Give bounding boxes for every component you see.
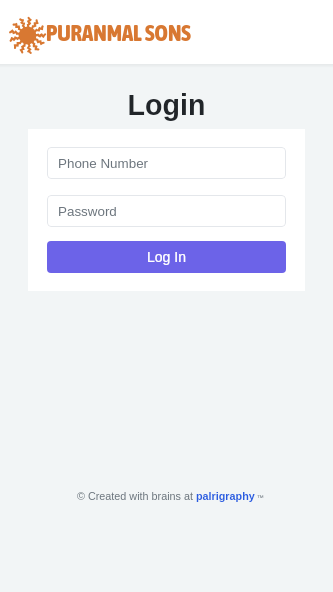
other: Puranmal Sons logo <box>5 13 50 58</box>
button[interactable]: Password <box>47 195 286 227</box>
staticText: Password <box>58 204 117 219</box>
button[interactable]: Phone Number <box>47 147 286 179</box>
staticText: Log In <box>147 249 186 265</box>
button[interactable]: Log In <box>47 241 286 273</box>
staticText: Phone Number <box>58 156 149 171</box>
staticText: © Created with brains at palrigraphy ™ <box>77 490 264 502</box>
staticText: PURANMAL SONS <box>46 20 191 46</box>
staticText: Login <box>0 89 333 121</box>
